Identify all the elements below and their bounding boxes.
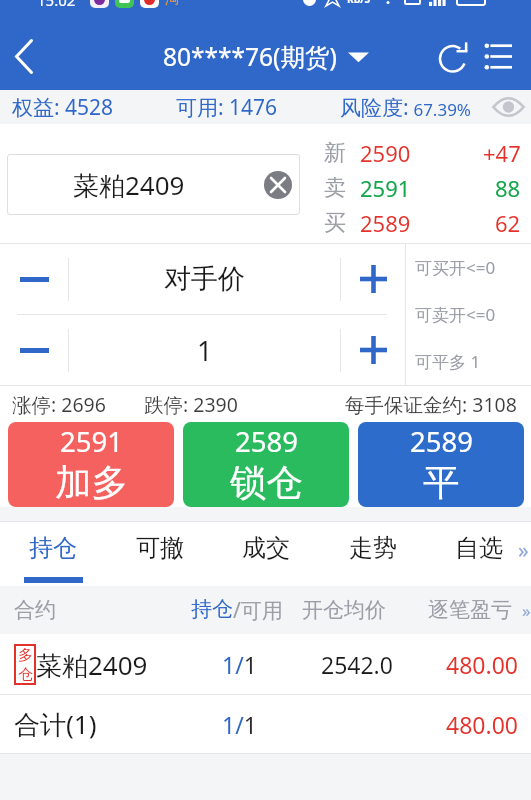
button[interactable]: Back <box>0 22 47 90</box>
staticText: 1/1 <box>222 649 257 680</box>
button[interactable]: 菜粕2409 <box>7 154 300 215</box>
staticText: 跌停: 2390 <box>144 391 238 418</box>
staticText: 加多 <box>55 460 128 506</box>
button[interactable]: 走势 <box>320 522 426 586</box>
staticText: 可平多 1 <box>415 350 481 373</box>
button[interactable]: 2591 <box>8 422 174 507</box>
staticText: 可买开<=0 <box>415 256 496 279</box>
staticText: 卖 <box>324 174 346 202</box>
staticText: 买 <box>324 209 346 237</box>
staticText: 权益: 4528 <box>12 93 114 122</box>
staticText: 480.00 <box>446 649 518 680</box>
staticText: 成交 <box>242 533 290 563</box>
staticText: 持仓 <box>29 533 77 563</box>
staticText: 合计(1) <box>14 706 97 742</box>
button[interactable]: 自选 <box>427 522 531 586</box>
button[interactable]: 多 <box>0 634 531 694</box>
staticText: 2589 <box>410 423 473 460</box>
staticText: 可卖开<=0 <box>415 303 496 326</box>
button[interactable]: Decrease <box>0 315 68 385</box>
staticText: 15:02 <box>37 0 76 8</box>
staticText: 可用: 1476 <box>176 93 278 122</box>
staticText: KB/S <box>347 0 370 6</box>
staticText: 涨停: 2696 <box>12 391 106 418</box>
staticText: 2591 <box>360 173 411 203</box>
button[interactable]: Increase <box>341 244 405 314</box>
staticText: 新 <box>324 139 346 167</box>
button[interactable]: 2589 <box>358 422 524 507</box>
staticText: 1 <box>197 332 213 369</box>
staticText: 开仓均价 <box>302 597 386 623</box>
button[interactable]: Increase <box>341 315 405 385</box>
staticText: 多 <box>18 646 33 665</box>
button[interactable]: Refresh <box>428 22 478 90</box>
staticText: +47 <box>483 138 521 168</box>
staticText: » <box>518 536 529 565</box>
staticText: 走势 <box>349 533 397 563</box>
staticText: 对手价 <box>164 262 245 296</box>
staticText: /可用 <box>233 596 283 625</box>
staticText: 菜粕2409 <box>36 647 148 683</box>
button[interactable]: 2589 <box>183 422 349 507</box>
staticText: 淘 <box>165 0 179 8</box>
staticText: 67.39% <box>409 98 471 121</box>
button[interactable]: Decrease <box>0 244 68 314</box>
staticText: » <box>522 599 531 622</box>
button[interactable]: 成交 <box>213 522 319 586</box>
staticText: 2542.0 <box>321 649 393 680</box>
staticText: 自选 <box>455 533 503 563</box>
button[interactable]: Clear <box>264 171 292 199</box>
staticText: 菜粕2409 <box>73 167 185 203</box>
staticText: 2589 <box>360 208 411 238</box>
button[interactable]: 持仓 <box>0 522 106 586</box>
button[interactable]: Toggle visibility <box>491 90 525 124</box>
staticText: 风险度: <box>340 93 409 122</box>
button[interactable]: Menu <box>482 22 526 90</box>
staticText: 逐笔盈亏 <box>428 597 512 623</box>
staticText: 62 <box>495 208 521 238</box>
staticText: 锁仓 <box>230 460 303 506</box>
staticText: 可撤 <box>136 533 184 563</box>
staticText: 80****76(期货) <box>163 40 337 73</box>
staticText: 仓 <box>18 665 33 684</box>
staticText: 2589 <box>235 423 298 460</box>
staticText: 1/1 <box>222 709 257 740</box>
staticText: 每手保证金约: 3108 <box>345 391 517 418</box>
staticText: 480.00 <box>446 709 518 740</box>
staticText: 2591 <box>60 423 123 460</box>
staticText: 88 <box>495 173 521 203</box>
button[interactable]: 可撤 <box>107 522 213 586</box>
staticText: 2590 <box>360 138 411 168</box>
button[interactable]: 80****76(期货) <box>163 40 369 73</box>
staticText: 持仓 <box>191 596 233 622</box>
staticText: 合约 <box>14 597 56 623</box>
staticText: 平 <box>423 460 460 506</box>
